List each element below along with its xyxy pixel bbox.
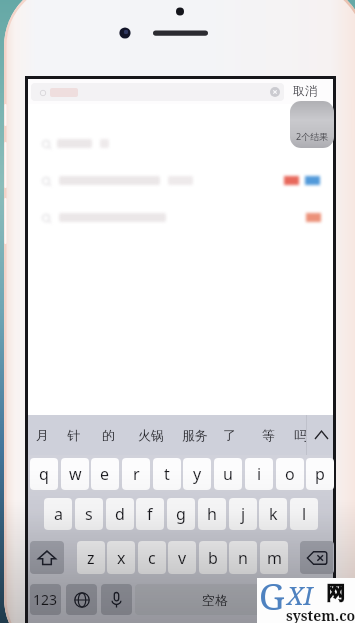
button[interactable]: More candidates bbox=[307, 415, 335, 455]
button[interactable]: 123 bbox=[30, 584, 61, 615]
staticText: x bbox=[117, 547, 126, 569]
staticText: XI bbox=[287, 578, 313, 612]
button[interactable]: v bbox=[168, 541, 196, 574]
staticText: k bbox=[269, 503, 278, 525]
staticText: h bbox=[207, 503, 217, 525]
staticText: q bbox=[39, 463, 49, 485]
button[interactable]: f bbox=[136, 498, 164, 530]
staticText: 月 bbox=[36, 427, 49, 443]
staticText: 吗 bbox=[294, 427, 306, 443]
button[interactable]: p bbox=[306, 458, 334, 490]
staticText: z bbox=[87, 547, 95, 569]
button[interactable] bbox=[28, 199, 333, 236]
staticText: 服务 bbox=[182, 427, 208, 443]
button[interactable]: Voice input bbox=[101, 584, 132, 615]
staticText: o bbox=[285, 463, 295, 485]
button[interactable]: Delete bbox=[300, 541, 334, 574]
staticText: system.com bbox=[286, 606, 355, 623]
button[interactable]: 空格 bbox=[135, 584, 295, 615]
staticText: t bbox=[164, 463, 170, 485]
staticText: c bbox=[148, 547, 156, 569]
staticText: v bbox=[178, 547, 187, 569]
button[interactable]: t bbox=[153, 458, 181, 490]
button[interactable]: 针 bbox=[62, 415, 84, 455]
button[interactable]: Switch keyboard language bbox=[66, 584, 97, 615]
button[interactable]: z bbox=[77, 541, 105, 574]
staticText: G bbox=[259, 572, 285, 617]
button[interactable]: w bbox=[61, 458, 89, 490]
staticText: 2个结果 bbox=[296, 130, 329, 142]
button[interactable]: b bbox=[199, 541, 227, 574]
staticText: d bbox=[115, 503, 125, 525]
button[interactable]: n bbox=[229, 541, 257, 574]
button[interactable]: d bbox=[106, 498, 134, 530]
button[interactable]: 了 bbox=[218, 415, 240, 455]
button[interactable]: 的 bbox=[97, 415, 119, 455]
button[interactable]: c bbox=[138, 541, 166, 574]
button[interactable]: 换行 bbox=[298, 584, 333, 615]
button[interactable]: 吗 bbox=[289, 415, 306, 455]
button[interactable]: g bbox=[167, 498, 195, 530]
button[interactable]: s bbox=[75, 498, 103, 530]
staticText: 了 bbox=[223, 427, 236, 443]
staticText: m bbox=[267, 547, 282, 569]
button[interactable]: m bbox=[260, 541, 288, 574]
staticText: 网 bbox=[326, 582, 345, 606]
staticText: a bbox=[54, 503, 63, 525]
staticText: i bbox=[257, 463, 262, 485]
staticText: u bbox=[223, 463, 233, 485]
button[interactable]: 等 bbox=[257, 415, 279, 455]
staticText: e bbox=[100, 463, 110, 485]
button[interactable]: h bbox=[198, 498, 226, 530]
button[interactable]: 取消 bbox=[293, 83, 317, 98]
button[interactable] bbox=[31, 83, 284, 101]
button[interactable]: r bbox=[122, 458, 150, 490]
staticText: n bbox=[238, 547, 248, 569]
button[interactable]: 火锅 bbox=[134, 415, 168, 455]
button[interactable]: l bbox=[290, 498, 318, 530]
button[interactable] bbox=[28, 125, 333, 162]
button[interactable]: i bbox=[245, 458, 273, 490]
button[interactable]: a bbox=[44, 498, 72, 530]
button[interactable]: y bbox=[183, 458, 211, 490]
button[interactable] bbox=[28, 162, 333, 199]
staticText: p bbox=[315, 463, 325, 485]
button[interactable]: o bbox=[276, 458, 304, 490]
staticText: 针 bbox=[67, 427, 80, 443]
staticText: 123 bbox=[33, 590, 58, 609]
staticText: s bbox=[85, 503, 93, 525]
staticText: 空格 bbox=[202, 592, 228, 608]
button[interactable]: q bbox=[30, 458, 58, 490]
button[interactable]: k bbox=[259, 498, 287, 530]
button[interactable]: e bbox=[91, 458, 119, 490]
button[interactable]: Clear search bbox=[267, 84, 282, 99]
staticText: f bbox=[147, 503, 153, 525]
staticText: 等 bbox=[262, 427, 275, 443]
button[interactable]: 月 bbox=[31, 415, 53, 455]
button[interactable]: u bbox=[214, 458, 242, 490]
staticText: w bbox=[69, 463, 82, 485]
staticText: b bbox=[208, 547, 218, 569]
staticText: g bbox=[176, 503, 186, 525]
button[interactable]: 服务 bbox=[178, 415, 212, 455]
button[interactable]: x bbox=[107, 541, 135, 574]
staticText: 换行 bbox=[304, 592, 328, 607]
staticText: 的 bbox=[102, 427, 115, 443]
staticText: j bbox=[241, 503, 246, 525]
button[interactable]: j bbox=[229, 498, 257, 530]
staticText: r bbox=[133, 463, 140, 485]
staticText: 火锅 bbox=[138, 427, 164, 443]
button[interactable]: 2个结果 bbox=[290, 101, 334, 148]
staticText: l bbox=[302, 503, 307, 525]
staticText: 取消 bbox=[293, 83, 317, 98]
button[interactable]: Shift bbox=[30, 541, 64, 574]
staticText: y bbox=[193, 463, 202, 485]
